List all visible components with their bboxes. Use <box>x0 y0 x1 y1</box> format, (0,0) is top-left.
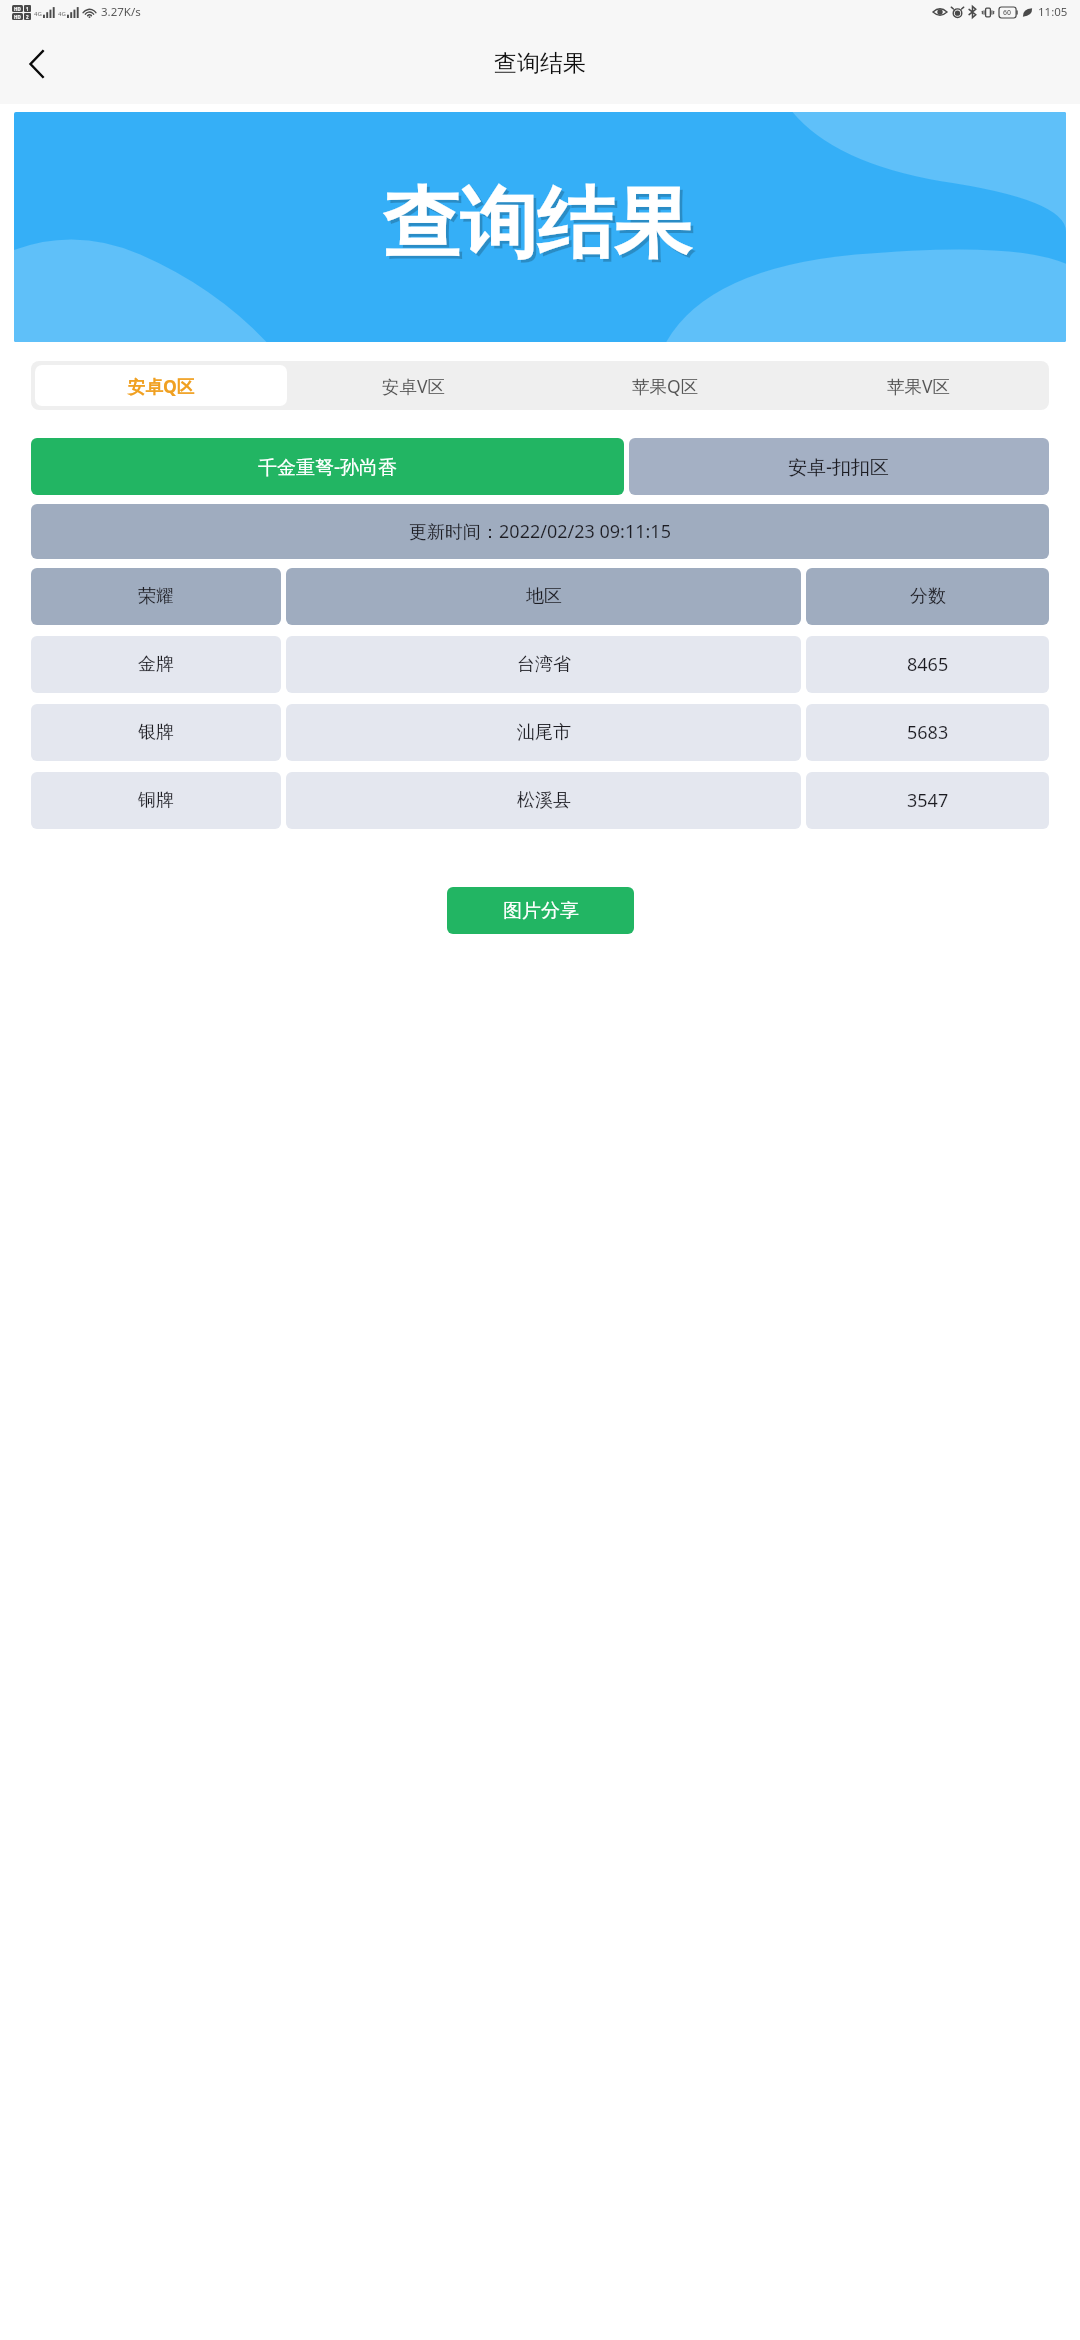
staticText: 3547 <box>907 788 949 813</box>
button[interactable]: 返回 <box>8 36 64 92</box>
staticText: 台湾省 <box>517 653 571 676</box>
staticText: 千金重弩-孙尚香 <box>258 454 398 480</box>
button[interactable]: 千金重弩-孙尚香 <box>31 438 624 495</box>
staticText: 2 <box>26 14 29 20</box>
staticText: 松溪县 <box>517 789 571 812</box>
staticText: 更新时间：2022/02/23 09:11:15 <box>409 519 671 544</box>
staticText: 60 <box>1003 8 1012 18</box>
staticText: 查询结果 <box>494 49 586 78</box>
staticText: 苹果Q区 <box>632 374 699 398</box>
staticText: 荣耀 <box>138 585 174 608</box>
staticText: 地区 <box>526 585 562 608</box>
staticText: 3.27K/s <box>101 4 141 20</box>
staticText: 苹果V区 <box>887 374 950 398</box>
button[interactable]: 安卓-扣扣区 <box>629 438 1049 495</box>
button[interactable]: 苹果V区 <box>792 365 1045 406</box>
staticText: 8465 <box>907 652 949 677</box>
staticText: 安卓Q区 <box>128 374 195 398</box>
staticText: 图片分享 <box>503 899 579 923</box>
staticText: 安卓-扣扣区 <box>788 454 890 480</box>
staticText: 分数 <box>910 585 946 608</box>
button[interactable]: 图片分享 <box>447 887 634 934</box>
staticText: 银牌 <box>138 721 174 744</box>
staticText: 金牌 <box>138 653 174 676</box>
staticText: HD <box>14 14 21 20</box>
staticText: 查询结果 <box>383 176 691 273</box>
button[interactable]: 查询结果 <box>14 112 1066 342</box>
staticText: 11:05 <box>1038 4 1068 20</box>
staticText: 铜牌 <box>138 789 174 812</box>
staticText: 查询结果 <box>386 179 694 276</box>
staticText: 4G <box>34 10 42 18</box>
button[interactable]: 安卓V区 <box>287 365 539 406</box>
button[interactable]: 安卓Q区 <box>35 365 287 406</box>
staticText: 安卓V区 <box>382 374 445 398</box>
staticText: 汕尾市 <box>517 721 571 744</box>
staticText: HD <box>14 6 21 12</box>
staticText: 4G <box>58 10 66 18</box>
button[interactable]: 苹果Q区 <box>539 365 792 406</box>
staticText: 5683 <box>907 720 949 745</box>
staticText: 1 <box>26 6 29 12</box>
